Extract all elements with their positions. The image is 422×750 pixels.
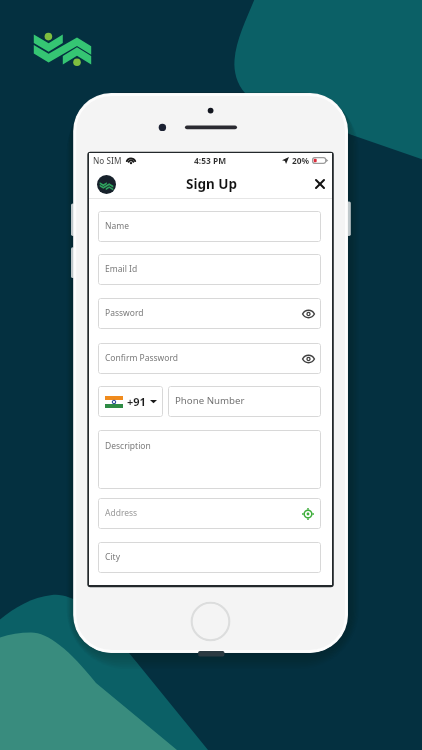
button[interactable]: City [98, 542, 321, 573]
staticText: No SIM [93, 155, 122, 166]
button[interactable]: App logo [97, 175, 116, 194]
button[interactable]: Confirm Password [98, 343, 321, 374]
button[interactable]: +91 [98, 386, 163, 417]
staticText: Password [105, 307, 144, 319]
staticText: Confirm Password [105, 352, 178, 364]
button[interactable]: Password [98, 298, 321, 329]
staticText: City [105, 551, 120, 563]
staticText: Description [105, 440, 151, 452]
staticText: +91 [127, 394, 146, 409]
staticText: Name [105, 220, 129, 232]
button[interactable]: Email Id [98, 254, 321, 285]
staticText: Email Id [105, 263, 138, 275]
button[interactable]: Phone Number [168, 386, 321, 417]
button[interactable]: Name [98, 211, 321, 242]
button[interactable]: Description [98, 430, 321, 489]
staticText: Address [105, 507, 138, 519]
staticText: 4:53 PM [194, 155, 227, 166]
staticText: Sign Up [186, 175, 238, 193]
button[interactable]: Address [98, 498, 321, 529]
staticText: 20% [292, 155, 310, 166]
button[interactable]: Close [311, 175, 328, 192]
staticText: Phone Number [175, 394, 245, 407]
